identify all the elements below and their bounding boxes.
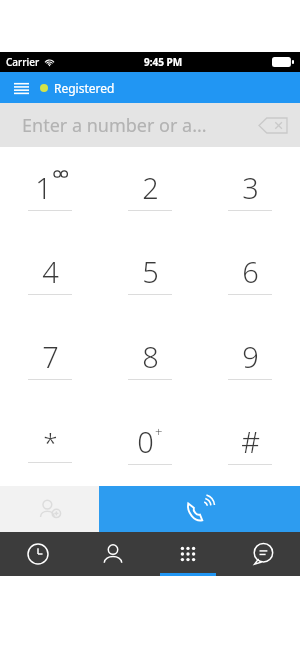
staticText: Registered: [54, 80, 115, 96]
staticText: 7: [42, 337, 59, 376]
button[interactable]: Enter a number or a...: [0, 103, 300, 147]
button[interactable]: Keypad: [150, 532, 225, 576]
button[interactable]: Recents: [0, 532, 75, 576]
button[interactable]: Menu: [8, 75, 34, 101]
staticText: *: [43, 424, 58, 459]
staticText: Carrier: [6, 55, 40, 69]
staticText: 1: [35, 168, 52, 207]
button[interactable]: Call: [99, 486, 300, 532]
button[interactable]: 5: [100, 231, 200, 316]
staticText: 9:45 PM: [144, 55, 183, 69]
button[interactable]: #: [200, 401, 300, 486]
button[interactable]: 7: [0, 316, 100, 401]
button[interactable]: 8: [100, 316, 200, 401]
button[interactable]: *: [0, 401, 100, 486]
button[interactable]: 0: [100, 401, 200, 486]
button[interactable]: 2: [100, 147, 200, 231]
button[interactable]: 6: [200, 231, 300, 316]
button[interactable]: 4: [0, 231, 100, 316]
staticText: 6: [242, 252, 259, 291]
staticText: +: [155, 423, 163, 441]
button[interactable]: 9: [200, 316, 300, 401]
staticText: 2: [142, 168, 159, 207]
button[interactable]: Contacts: [75, 532, 150, 576]
button[interactable]: 3: [200, 147, 300, 231]
button[interactable]: 1: [0, 147, 100, 231]
button[interactable]: Messages: [225, 532, 300, 576]
staticText: 8: [142, 337, 159, 376]
staticText: 3: [242, 168, 259, 207]
staticText: #: [241, 422, 260, 461]
staticText: 5: [142, 252, 159, 291]
staticText: Enter a number or a...: [22, 113, 207, 138]
staticText: 9: [242, 337, 259, 376]
button[interactable]: Backspace: [258, 115, 288, 135]
staticText: 0: [137, 422, 154, 461]
staticText: 4: [42, 252, 59, 291]
